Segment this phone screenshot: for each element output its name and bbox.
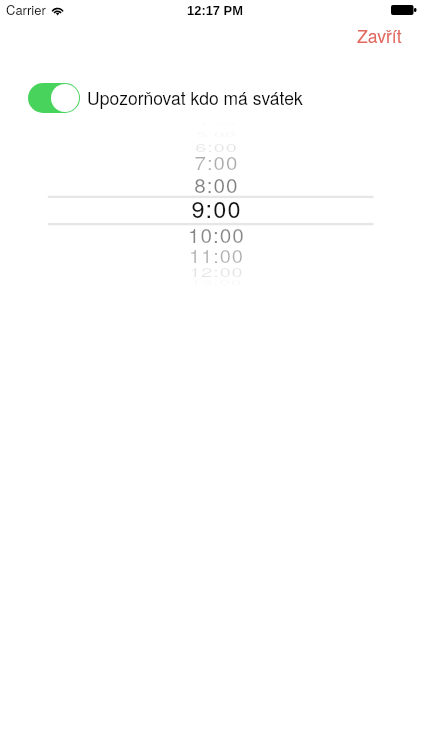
staticText: 7:00 — [194, 150, 239, 174]
staticText: Upozorňovat kdo má svátek — [87, 85, 303, 110]
button[interactable]: 4:00 — [0, 110, 422, 290]
staticText: 8:00 — [194, 170, 239, 198]
button[interactable]: Name-day notification switch, on — [28, 83, 80, 113]
button[interactable]: Name-day notification switch, on — [28, 82, 303, 113]
staticText: 11:00 — [189, 243, 244, 267]
staticText: 12:00 — [189, 263, 244, 279]
staticText: Zavřít — [357, 23, 402, 48]
staticText: 10:00 — [188, 220, 245, 248]
other: Wi-Fi — [51, 4, 65, 17]
staticText: 6:00 — [195, 138, 238, 154]
other: Battery — [391, 5, 417, 15]
button[interactable]: Zavřít — [340, 20, 418, 50]
staticText: Carrier — [6, 0, 46, 19]
staticText: 9:00 — [191, 191, 242, 223]
staticText: 12:17 PM — [4, 3, 422, 17]
